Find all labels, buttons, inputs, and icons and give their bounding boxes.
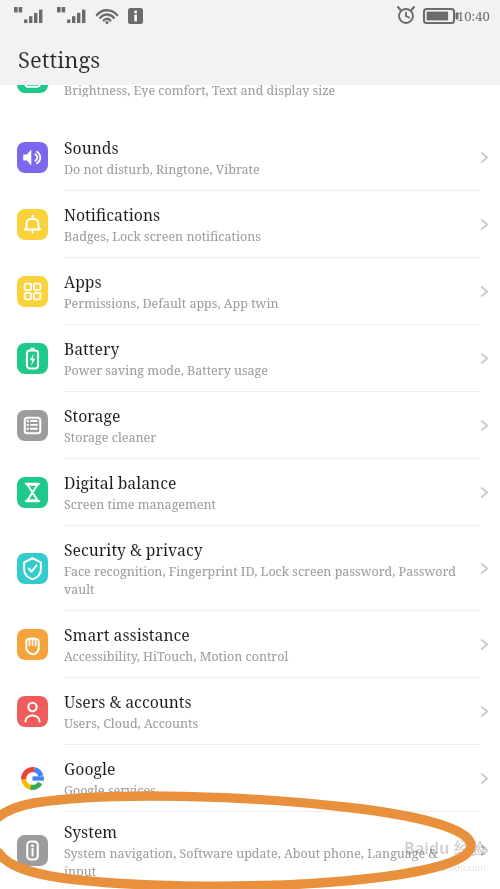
button[interactable]: Sounds [0,124,500,191]
other: Storage [468,392,500,458]
staticText: Brightness, Eye comfort, Text and displa… [64,85,336,97]
staticText: Screen time management [64,496,217,513]
staticText: 10:40 [457,7,490,25]
staticText: Apps [64,271,102,292]
button[interactable]: Notifications [0,191,500,258]
staticText: System navigation, Software update, Abou… [64,845,462,880]
staticText: Google services [64,782,156,799]
button[interactable]: Display [0,85,500,97]
staticText: Sounds [64,137,119,158]
staticText: Digital balance [64,472,177,493]
other: Security & privacy [468,526,500,610]
other: Notifications [468,191,500,257]
button[interactable]: Storage [0,392,500,459]
staticText: Users & accounts [64,691,192,712]
staticText: Security & privacy [64,539,203,560]
staticText: Smart assistance [64,624,190,645]
button[interactable]: Users & accounts [0,678,500,745]
staticText: Baidu 经验 [404,837,486,859]
other: Users & accounts [468,678,500,744]
other: Google [468,745,500,811]
other: Digital balance [468,459,500,525]
staticText: System [64,821,118,842]
staticText: Permissions, Default apps, App twin [64,295,279,312]
staticText: Users, Cloud, Accounts [64,715,199,732]
staticText: Battery [64,338,120,359]
button[interactable]: Apps [0,258,500,325]
staticText: Storage cleaner [64,429,157,446]
other: Apps [468,258,500,324]
button[interactable]: Digital balance [0,459,500,526]
staticText: Settings [18,44,101,74]
staticText: Notifications [64,204,161,225]
other: Sounds [468,124,500,190]
staticText: Accessibility, HiTouch, Motion control [64,648,289,665]
staticText: Do not disturb, Ringtone, Vibrate [64,161,260,178]
button[interactable]: Google [0,745,500,812]
other: Battery [468,325,500,391]
staticText: Google [64,758,116,779]
staticText: Badges, Lock screen notifications [64,228,261,245]
other: System [468,812,500,889]
button[interactable]: System [0,812,500,889]
staticText: Storage [64,405,121,426]
button[interactable]: Smart assistance [0,611,500,678]
staticText: Power saving mode, Battery usage [64,362,269,379]
button[interactable]: Battery [0,325,500,392]
button[interactable]: Security & privacy [0,526,500,611]
staticText: jingyan.baidu.com [408,861,486,873]
other: Smart assistance [468,611,500,677]
staticText: Face recognition, Fingerprint ID, Lock s… [64,563,462,598]
